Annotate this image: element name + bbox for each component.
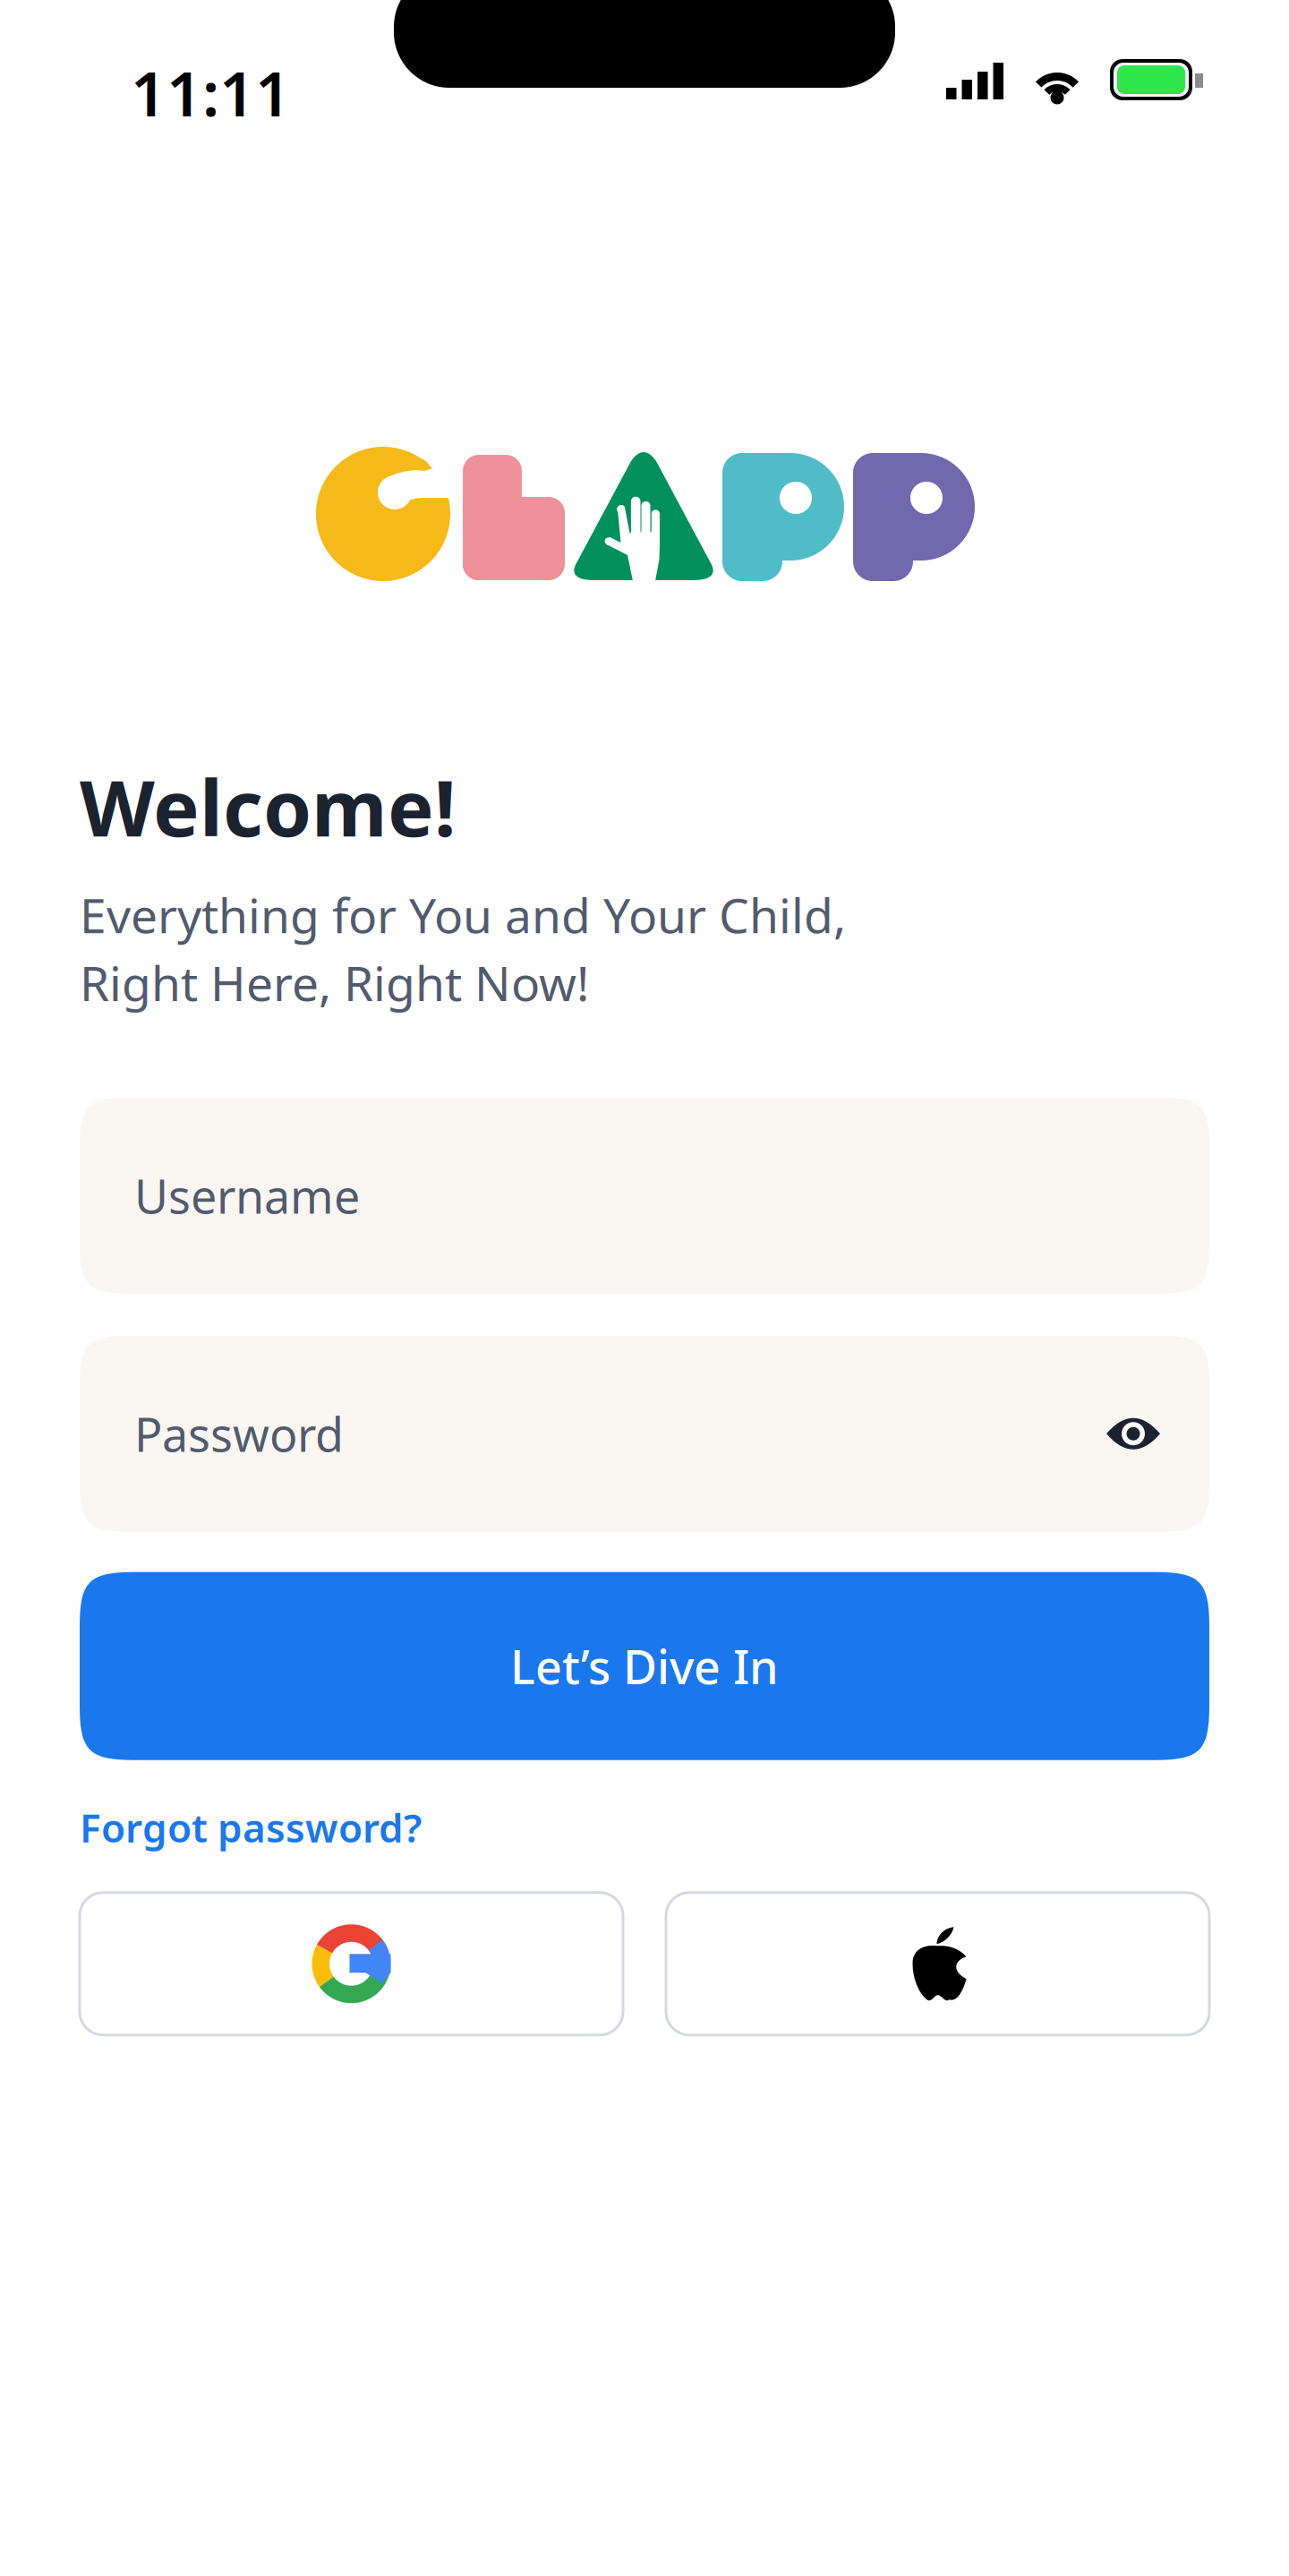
staticText: Everything for You and Your Child, Right…: [80, 883, 846, 1014]
button[interactable]: Password: [80, 1336, 1209, 1532]
staticText: Username: [134, 1165, 360, 1226]
button[interactable]: Forgot password?: [80, 1792, 422, 1862]
staticText: Forgot password?: [80, 1801, 422, 1853]
staticText: Welcome!: [80, 755, 456, 858]
button[interactable]: Continue with Apple: [666, 1893, 1209, 2035]
staticText: 11:11: [131, 51, 291, 134]
button[interactable]: Let’s Dive In: [80, 1572, 1209, 1760]
button[interactable]: Username: [80, 1097, 1209, 1294]
button[interactable]: Continue with Google: [80, 1893, 623, 2035]
staticText: Password: [134, 1403, 344, 1465]
staticText: Let’s Dive In: [510, 1635, 779, 1697]
